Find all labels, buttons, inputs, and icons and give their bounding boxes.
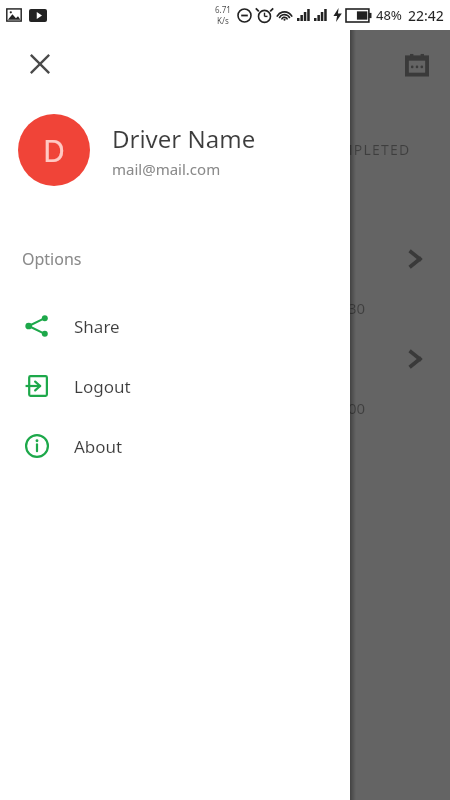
staticText: :30 (344, 298, 366, 318)
button[interactable]: Close (18, 42, 62, 86)
staticText: K/s (217, 15, 229, 26)
button[interactable]: Calendar (400, 48, 434, 82)
staticText: D (43, 130, 65, 171)
staticText: Logout (74, 375, 131, 398)
staticText: 48% (376, 6, 402, 24)
button[interactable]: D (18, 114, 338, 186)
staticText: 22:42 (408, 6, 444, 25)
button[interactable]: About (0, 416, 350, 476)
staticText: Driver Name (112, 122, 256, 155)
staticText: Share (74, 315, 120, 338)
staticText: 6.71 (215, 4, 231, 15)
staticText: Options (22, 248, 82, 270)
button[interactable]: Logout (0, 356, 350, 416)
staticText: :00 (344, 398, 366, 418)
button[interactable]: Open item (398, 242, 432, 276)
staticText: COMPLETED (318, 140, 411, 159)
staticText: mail@mail.com (112, 159, 221, 179)
button[interactable]: Open item (398, 342, 432, 376)
button[interactable]: Share (0, 296, 350, 356)
staticText: About (74, 435, 123, 458)
